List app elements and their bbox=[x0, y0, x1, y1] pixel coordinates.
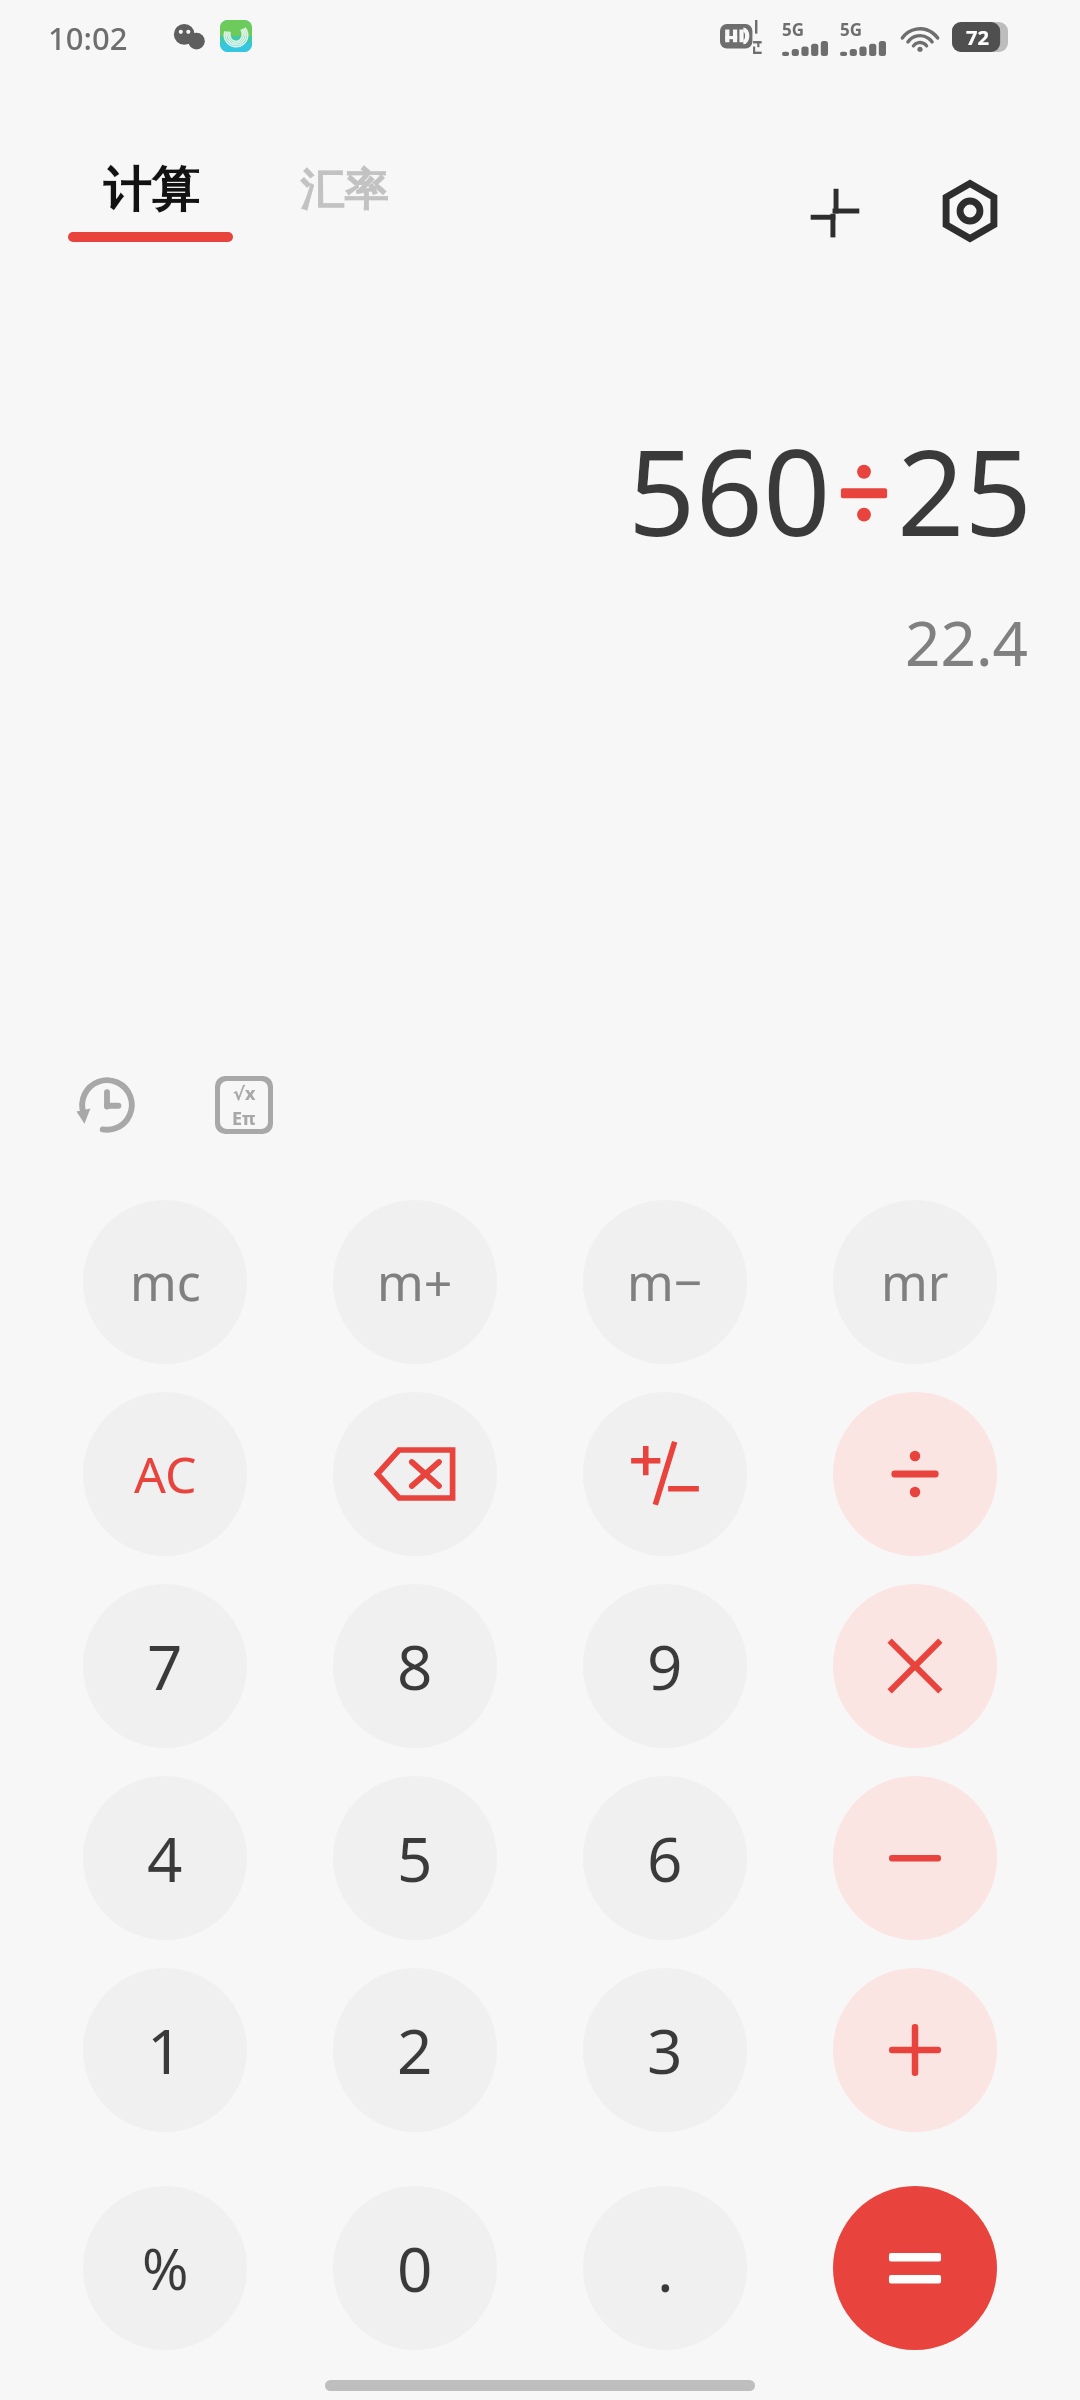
staticText: 5G bbox=[840, 18, 863, 41]
staticText: 7 bbox=[147, 1624, 183, 1708]
staticText: 22.4 bbox=[0, 600, 1028, 684]
button[interactable]: Split screen bbox=[790, 166, 880, 256]
button[interactable]: 1 bbox=[83, 1968, 247, 2132]
staticText: 5G bbox=[782, 18, 805, 41]
staticText: m+ bbox=[377, 1248, 453, 1316]
staticText: 25 bbox=[897, 410, 1032, 571]
button[interactable]: 4 bbox=[83, 1776, 247, 1940]
button[interactable]: 汇率 bbox=[300, 163, 388, 218]
button[interactable]: 9 bbox=[583, 1584, 747, 1748]
button[interactable]: 计算 bbox=[68, 160, 233, 242]
staticText: 2 bbox=[397, 2008, 433, 2092]
button[interactable]: mc bbox=[83, 1200, 247, 1364]
staticText: 3 bbox=[647, 2008, 683, 2092]
button[interactable]: m− bbox=[583, 1200, 747, 1364]
staticText: 72 bbox=[966, 24, 989, 51]
staticText: 4 bbox=[147, 1816, 183, 1900]
button[interactable]: % bbox=[83, 2186, 247, 2350]
button[interactable]: Toggle sign bbox=[583, 1392, 747, 1556]
button[interactable]: Multiply bbox=[833, 1584, 997, 1748]
button[interactable]: 7 bbox=[83, 1584, 247, 1748]
button[interactable]: AC bbox=[83, 1392, 247, 1556]
button[interactable]: Subtract bbox=[833, 1776, 997, 1940]
button[interactable]: mr bbox=[833, 1200, 997, 1364]
staticText: mr bbox=[881, 1248, 949, 1316]
button[interactable]: Backspace bbox=[333, 1392, 497, 1556]
staticText: % bbox=[142, 2230, 189, 2306]
staticText: Eπ bbox=[232, 1106, 256, 1129]
staticText: 6 bbox=[647, 1816, 683, 1900]
button[interactable]: Settings bbox=[925, 166, 1015, 256]
staticText: √x bbox=[233, 1081, 256, 1106]
staticText: 560 bbox=[628, 410, 831, 571]
staticText: 计算 bbox=[103, 160, 199, 220]
button[interactable]: Divide bbox=[833, 1392, 997, 1556]
button[interactable]: Equals bbox=[833, 2186, 997, 2350]
button[interactable]: 0 bbox=[333, 2186, 497, 2350]
staticText: 5 bbox=[397, 1816, 433, 1900]
button[interactable]: Add bbox=[833, 1968, 997, 2132]
staticText: 9 bbox=[647, 1624, 683, 1708]
staticText: 10:02 bbox=[48, 17, 128, 59]
button[interactable]: 3 bbox=[583, 1968, 747, 2132]
button[interactable]: m+ bbox=[333, 1200, 497, 1364]
button[interactable]: History bbox=[48, 1046, 166, 1164]
button[interactable]: Scientific bbox=[185, 1046, 303, 1164]
button[interactable]: 2 bbox=[333, 1968, 497, 2132]
button[interactable]: . bbox=[583, 2186, 747, 2350]
staticText: mc bbox=[130, 1248, 201, 1316]
staticText: AC bbox=[134, 1440, 197, 1508]
staticText: 0 bbox=[397, 2226, 433, 2310]
staticText: 1 bbox=[147, 2008, 183, 2092]
button[interactable]: 6 bbox=[583, 1776, 747, 1940]
button[interactable]: 5 bbox=[333, 1776, 497, 1940]
staticText: m− bbox=[627, 1248, 703, 1316]
button[interactable]: 8 bbox=[333, 1584, 497, 1748]
staticText: 8 bbox=[397, 1624, 433, 1708]
staticText: . bbox=[657, 2226, 674, 2310]
